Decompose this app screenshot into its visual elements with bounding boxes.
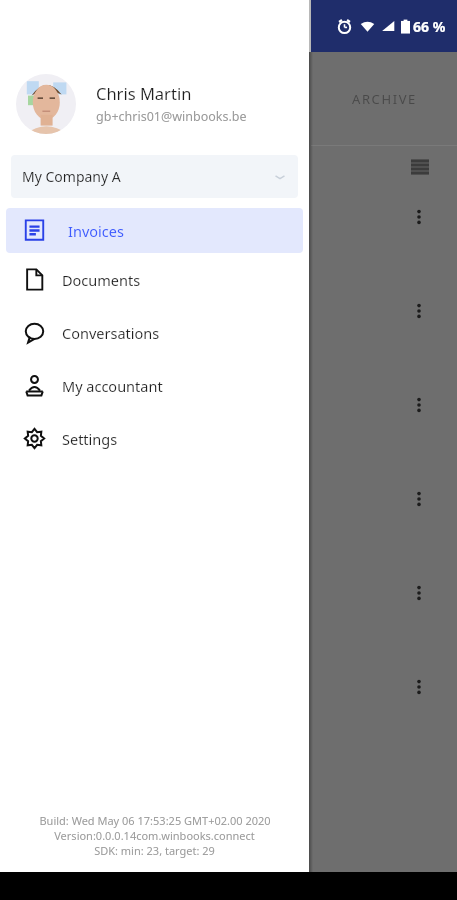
button[interactable]: More options <box>404 578 434 608</box>
button[interactable]: More options <box>404 484 434 514</box>
staticText: gb+chris01@winbooks.be <box>96 108 247 125</box>
button[interactable]: ARCHIVE <box>311 52 457 145</box>
staticText: ARCHIVE <box>352 90 417 108</box>
button[interactable]: Settings <box>0 412 309 465</box>
button[interactable]: Sort list <box>405 152 435 182</box>
button[interactable]: More options <box>404 202 434 232</box>
button[interactable]: More options <box>404 390 434 420</box>
button[interactable]: More options <box>404 296 434 326</box>
staticText: 66 % <box>413 17 446 36</box>
button[interactable]: Conversations <box>0 306 309 359</box>
staticText: My accountant <box>62 376 163 396</box>
button[interactable]: Invoices <box>6 208 303 253</box>
staticText: My Company A <box>22 167 121 186</box>
staticText: Version:0.0.0.14com.winbooks.connect <box>54 828 255 843</box>
button[interactable]: More options <box>404 672 434 702</box>
staticText: Settings <box>62 429 118 449</box>
staticText: Conversations <box>62 323 160 343</box>
staticText: Documents <box>62 270 141 290</box>
button[interactable]: My accountant <box>0 359 309 412</box>
staticText: Build: Wed May 06 17:53:25 GMT+02.00 202… <box>39 813 271 828</box>
button[interactable]: Chris Martin <box>0 52 309 155</box>
staticText: Invoices <box>68 221 124 241</box>
staticText: SDK: min: 23, target: 29 <box>94 843 215 858</box>
staticText: Chris Martin <box>96 82 192 104</box>
button[interactable]: My Company A <box>11 155 298 198</box>
button[interactable]: Documents <box>0 253 309 306</box>
